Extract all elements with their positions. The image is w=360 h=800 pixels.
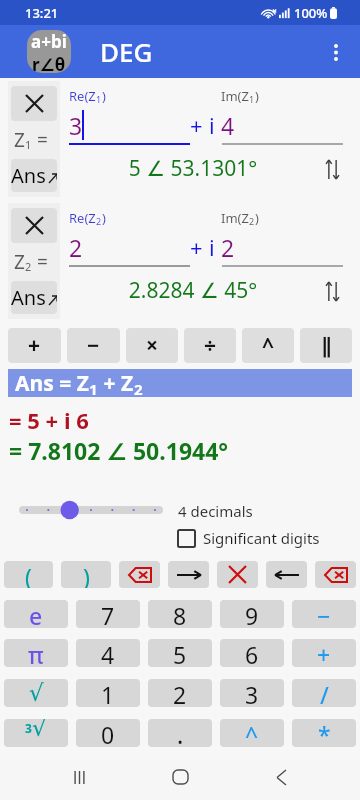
staticText: i (209, 110, 215, 140)
staticText: 2 (173, 679, 187, 707)
button[interactable]: 0 (76, 719, 140, 747)
button[interactable]: 8 (148, 600, 212, 628)
staticText: 2.8284 ∠ 45° (73, 276, 313, 305)
staticText: * (318, 719, 331, 747)
staticText: 9 (245, 600, 259, 628)
button[interactable]: Home (158, 755, 202, 799)
button[interactable]: 9 (220, 600, 284, 628)
button[interactable]: Clear all (217, 561, 258, 588)
button[interactable]: Close parenthesis (61, 561, 111, 588)
button[interactable]: Open parenthesis (4, 561, 53, 588)
button[interactable]: . (148, 719, 212, 747)
staticText: 3 (69, 110, 83, 141)
staticText: Im(Z (221, 87, 249, 105)
staticText: 1 (96, 93, 102, 105)
button[interactable]: Real part (51, 105, 191, 143)
staticText: 13:21 (25, 4, 59, 22)
button[interactable]: + (8, 328, 61, 363)
button[interactable]: App icon (27, 30, 71, 73)
staticText: √ (29, 680, 44, 707)
button[interactable]: 4 (76, 639, 140, 667)
staticText: 1 (249, 93, 255, 105)
button[interactable]: Swap (313, 276, 351, 306)
staticText: = (32, 127, 48, 153)
staticText: ) (102, 209, 106, 227)
button[interactable]: Ans = Z (8, 369, 352, 397)
staticText: i (209, 232, 215, 262)
staticText: ) (255, 209, 259, 227)
staticText: e (29, 600, 43, 628)
button[interactable]: / (292, 679, 356, 707)
button[interactable]: Real part (51, 227, 191, 265)
button[interactable]: Decimals slider (19, 496, 163, 524)
staticText: ∥ (321, 334, 332, 358)
staticText: × (146, 331, 159, 360)
button[interactable]: Back (259, 755, 303, 799)
staticText: 2 (69, 232, 83, 263)
staticText: π (28, 639, 44, 667)
staticText: ) (255, 87, 259, 105)
button[interactable]: 7 (76, 600, 140, 628)
staticText: 5 (173, 639, 187, 667)
button[interactable]: Ans (11, 281, 57, 314)
button[interactable]: 3 (220, 679, 284, 707)
button[interactable]: Clear (11, 86, 57, 121)
staticText: 1 (101, 679, 115, 707)
staticText: = 7.8102 ∠ 50.1944° (9, 435, 229, 466)
staticText: a+bi (31, 30, 67, 53)
button[interactable]: ^ (220, 719, 284, 747)
staticText: ) (83, 561, 90, 588)
staticText: ^ (262, 331, 275, 360)
staticText: Ans (11, 284, 46, 311)
button[interactable]: Backspace (315, 561, 356, 588)
button[interactable]: 1 (76, 679, 140, 707)
staticText: 2 (25, 259, 32, 274)
button[interactable]: + (292, 639, 356, 667)
staticText: 6 (245, 639, 259, 667)
staticText: 2 (96, 215, 102, 227)
staticText: + Z (98, 369, 134, 397)
staticText: / (320, 679, 329, 707)
button[interactable]: √ (4, 679, 68, 707)
button[interactable]: Swap (313, 154, 351, 184)
button[interactable]: 6 (220, 639, 284, 667)
button[interactable]: Significant digits (178, 528, 320, 548)
staticText: 4 (101, 639, 115, 667)
staticText: Significant digits (203, 528, 320, 548)
button[interactable]: ∥ (300, 328, 352, 363)
staticText: . (177, 719, 184, 747)
button[interactable]: 2 (148, 679, 212, 707)
button[interactable]: * (292, 719, 356, 747)
button[interactable]: π (4, 639, 68, 667)
button[interactable]: 3 (4, 719, 68, 747)
staticText: Ans (11, 162, 46, 189)
button[interactable]: Ans (11, 159, 57, 192)
button[interactable]: 5 (148, 639, 212, 667)
staticText: = 5 + i 6 (9, 405, 89, 435)
staticText: 5 ∠ 53.1301° (73, 154, 313, 183)
button[interactable]: More options (312, 28, 360, 76)
staticText: + (28, 331, 41, 360)
button[interactable]: − (67, 328, 120, 363)
staticText: 4 (221, 110, 235, 141)
staticText: Z (14, 127, 25, 153)
button[interactable]: ^ (242, 328, 294, 363)
button[interactable]: Clear (11, 208, 57, 243)
staticText: − (317, 600, 331, 628)
button[interactable]: Next (168, 561, 209, 588)
button[interactable]: − (292, 600, 356, 628)
button[interactable]: × (126, 328, 178, 363)
staticText: Re(Z (69, 209, 96, 227)
staticText: 2 (249, 215, 255, 227)
staticText: + (190, 110, 203, 140)
button[interactable]: Recents (57, 755, 101, 799)
button[interactable]: e (4, 600, 68, 628)
staticText: + (190, 232, 203, 262)
staticText: 100% (294, 4, 328, 22)
button[interactable]: Previous (266, 561, 307, 588)
button[interactable]: Clear entry (119, 561, 160, 588)
staticText: 4 decimals (178, 501, 253, 521)
staticText: 3 (245, 679, 259, 707)
button[interactable]: ÷ (184, 328, 236, 363)
staticText: 2 (134, 379, 143, 399)
